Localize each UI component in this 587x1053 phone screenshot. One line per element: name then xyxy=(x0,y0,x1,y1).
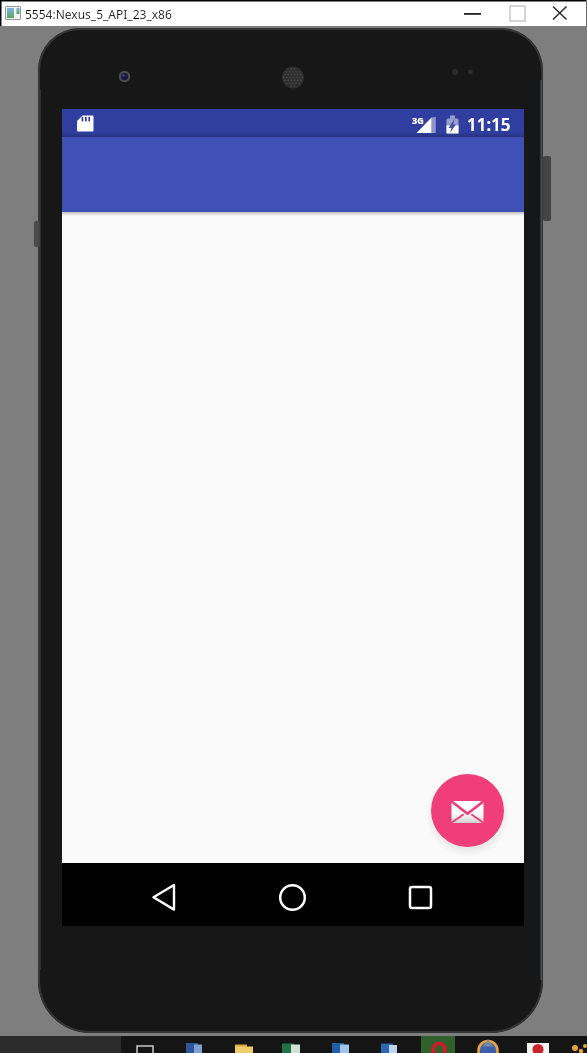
button[interactable] xyxy=(390,867,450,922)
button[interactable] xyxy=(499,0,533,26)
button[interactable] xyxy=(456,0,490,26)
button[interactable] xyxy=(262,867,322,922)
staticText: 11:15 xyxy=(467,113,511,136)
button[interactable] xyxy=(548,0,582,26)
button[interactable] xyxy=(431,774,504,847)
button[interactable] xyxy=(133,867,193,922)
staticText: 3G xyxy=(412,114,424,126)
staticText: 5554:Nexus_5_API_23_x86 xyxy=(25,6,172,22)
